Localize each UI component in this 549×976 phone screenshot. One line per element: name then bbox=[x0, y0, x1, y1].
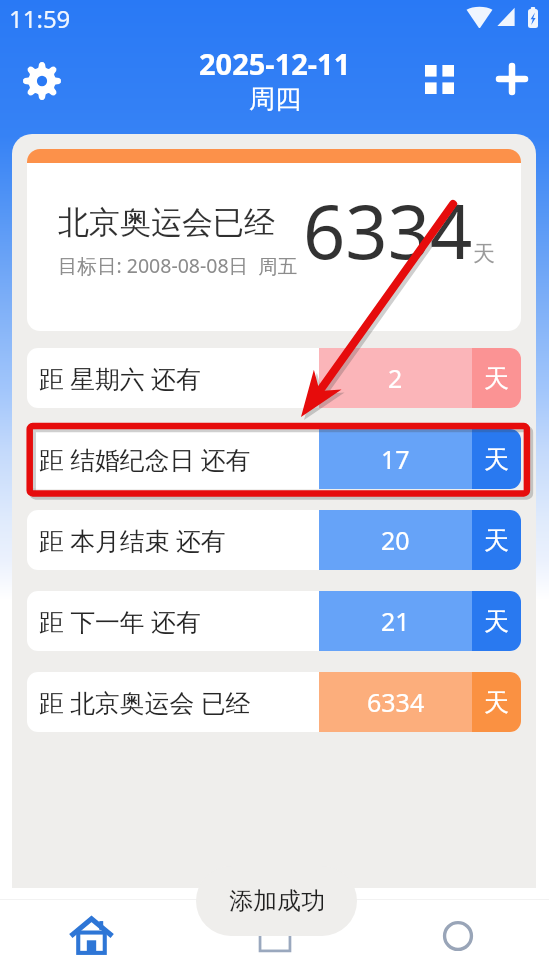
staticText: 11:59 bbox=[9, 2, 71, 35]
staticText: 6334 bbox=[303, 180, 473, 281]
staticText: 天 bbox=[484, 525, 509, 556]
staticText: 添加成功 bbox=[229, 886, 325, 916]
staticText: 2 bbox=[388, 361, 403, 395]
button[interactable]: Add bbox=[486, 53, 538, 105]
staticText: 天 bbox=[484, 444, 509, 475]
staticText: 6334 bbox=[367, 685, 425, 719]
staticText: 距 本月结束 还有 bbox=[39, 523, 319, 557]
staticText: 天 bbox=[484, 687, 509, 718]
staticText: 20 bbox=[381, 523, 410, 557]
staticText: 距 北京奥运会 已经 bbox=[39, 685, 319, 719]
staticText: 天 bbox=[473, 240, 495, 268]
button[interactable]: Settings bbox=[16, 55, 68, 107]
staticText: 21 bbox=[381, 604, 410, 638]
button[interactable]: 距 北京奥运会 已经 bbox=[27, 672, 521, 732]
staticText: 天 bbox=[484, 363, 509, 394]
staticText: 天 bbox=[484, 606, 509, 637]
button[interactable]: Calendar bbox=[183, 897, 366, 974]
staticText: 距 星期六 还有 bbox=[39, 361, 319, 395]
staticText: 距 下一年 还有 bbox=[39, 604, 319, 638]
staticText: 北京奥运会已经 bbox=[58, 203, 275, 242]
staticText: 目标日: 2008-08-08日 周五 bbox=[58, 252, 298, 279]
staticText: 距 结婚纪念日 还有 bbox=[39, 442, 319, 476]
button[interactable]: 北京奥运会已经 bbox=[27, 149, 521, 331]
button[interactable]: 距 星期六 还有 bbox=[27, 348, 521, 408]
button[interactable]: 距 本月结束 还有 bbox=[27, 510, 521, 570]
button[interactable]: Grid view bbox=[413, 53, 465, 105]
button[interactable]: 距 下一年 还有 bbox=[27, 591, 521, 651]
button[interactable]: Home bbox=[0, 897, 183, 974]
staticText: 17 bbox=[381, 442, 410, 476]
staticText: 2025-12-11 bbox=[199, 44, 351, 83]
staticText: 周四 bbox=[249, 83, 301, 116]
button[interactable]: Mine bbox=[366, 897, 549, 974]
button[interactable]: 距 结婚纪念日 还有 bbox=[27, 429, 521, 489]
